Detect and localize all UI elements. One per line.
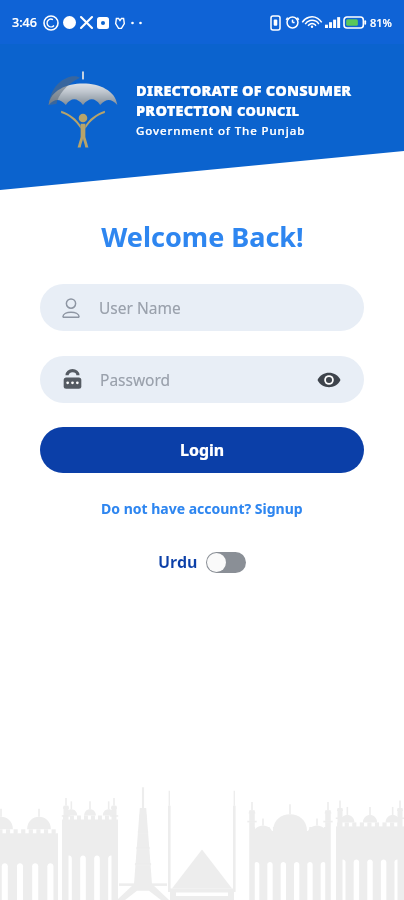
staticText: User Name — [99, 297, 181, 318]
staticText: 3:46 — [12, 14, 37, 31]
staticText: COUNCIL — [237, 102, 300, 120]
button[interactable]: Urdu — [152, 546, 252, 578]
button[interactable]: Do not have account? Signup — [93, 495, 311, 522]
staticText: DIRECTORATE OF CONSUMER — [136, 80, 352, 100]
button[interactable]: Show password — [314, 365, 344, 395]
staticText: Login — [180, 439, 225, 461]
staticText: Welcome Back! — [101, 218, 304, 255]
staticText: Do not have account? Signup — [101, 499, 303, 518]
button[interactable]: Password — [40, 356, 364, 403]
staticText: Government of The Punjab — [136, 123, 306, 139]
staticText: Urdu — [158, 551, 198, 573]
staticText: Password — [100, 369, 314, 390]
staticText: 81% — [370, 15, 392, 30]
button[interactable]: User Name — [40, 284, 364, 331]
button[interactable]: Login — [40, 427, 364, 473]
staticText: PROTECTION — [136, 100, 237, 120]
